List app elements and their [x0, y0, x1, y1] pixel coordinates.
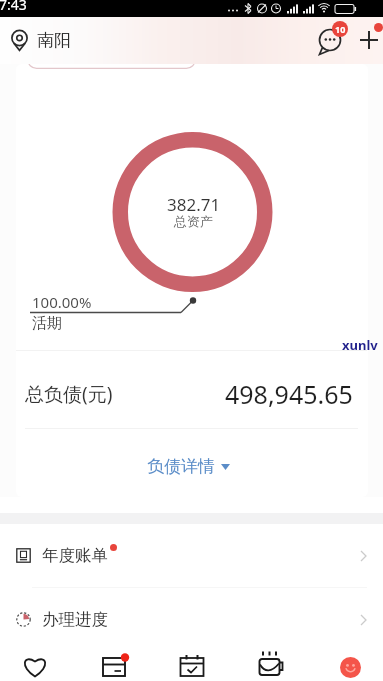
staticText: 南阳: [37, 30, 71, 51]
staticText: 活期: [32, 314, 62, 333]
staticText: 负债详情: [147, 456, 215, 477]
button[interactable]: Messages: [312, 22, 348, 58]
button[interactable]: 办理进度: [0, 588, 383, 651]
button[interactable]: Calendar: [172, 647, 212, 681]
staticText: xunlv: [342, 336, 378, 354]
button[interactable]: Add: [351, 22, 383, 58]
staticText: 498,945.65: [225, 377, 353, 411]
staticText: 总负债(元): [25, 381, 113, 407]
staticText: 10: [335, 23, 346, 35]
button[interactable]: Cards: [94, 647, 134, 681]
button[interactable]: Profile: [330, 647, 370, 681]
button[interactable]: 南阳: [8, 17, 79, 64]
staticText: 总资产: [174, 213, 213, 229]
staticText: 7:43: [0, 0, 27, 12]
staticText: 年度账单: [42, 545, 108, 566]
staticText: 382.71: [167, 193, 221, 216]
button[interactable]: Coffee: [250, 647, 290, 681]
button[interactable]: Favorites: [15, 647, 55, 681]
button[interactable]: 年度账单: [0, 524, 383, 587]
staticText: 100.00%: [32, 292, 92, 312]
button[interactable]: 负债详情: [139, 453, 238, 480]
staticText: 办理进度: [42, 609, 108, 630]
